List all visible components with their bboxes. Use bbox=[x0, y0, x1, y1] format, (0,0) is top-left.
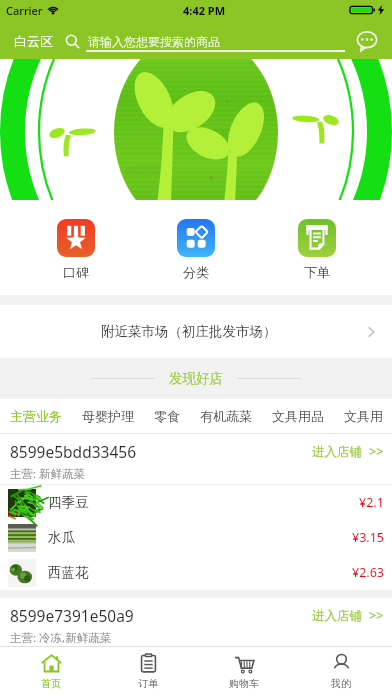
staticText: 白云区 bbox=[14, 33, 53, 49]
staticText: 首页 bbox=[41, 677, 61, 690]
staticText: 附近菜市场（初庄批发市场） bbox=[101, 323, 277, 340]
button[interactable]: 西蓝花 bbox=[0, 555, 392, 590]
staticText: 有机蔬菜 bbox=[200, 408, 252, 424]
button[interactable]: 附近菜市场（初庄批发市场） bbox=[0, 305, 392, 358]
button[interactable]: 母婴护理 bbox=[72, 403, 144, 429]
staticText: 四季豆 bbox=[48, 494, 89, 511]
staticText: 分类 bbox=[183, 264, 209, 280]
button[interactable]: 订单 bbox=[103, 647, 193, 696]
staticText: 4:42 PM bbox=[183, 3, 226, 18]
button[interactable]: 购物车 bbox=[199, 647, 289, 696]
staticText: 水瓜 bbox=[48, 529, 75, 546]
staticText: 文具用品 bbox=[344, 408, 382, 424]
button[interactable]: Messages bbox=[352, 26, 382, 56]
staticText: 主营: 冷冻,新鲜蔬菜 bbox=[10, 630, 112, 646]
staticText: 进入店铺 bbox=[312, 444, 362, 460]
staticText: 购物车 bbox=[229, 677, 259, 690]
button[interactable]: 分类 bbox=[151, 219, 241, 280]
staticText: 文具用品 bbox=[272, 408, 324, 424]
staticText: 8599e7391e50a9 bbox=[10, 605, 134, 626]
button[interactable]: 文具用品 bbox=[262, 403, 334, 429]
staticText: 母婴护理 bbox=[82, 408, 134, 424]
button[interactable]: 主营业务 bbox=[0, 403, 72, 429]
button[interactable]: 水瓜 bbox=[0, 520, 392, 555]
staticText: 8599e5bdd33456 bbox=[10, 441, 137, 462]
staticText: 我的 bbox=[331, 677, 351, 690]
staticText: 订单 bbox=[138, 677, 158, 690]
staticText: 下单 bbox=[304, 264, 330, 280]
button[interactable]: 零食 bbox=[144, 403, 190, 429]
staticText: 零食 bbox=[154, 408, 180, 424]
button[interactable]: 首页 bbox=[6, 647, 96, 696]
button[interactable]: 白云区 bbox=[12, 29, 55, 53]
staticText: 请输入您想要搜索的商品 bbox=[88, 34, 220, 49]
staticText: 口碑 bbox=[63, 264, 89, 280]
button[interactable]: 有机蔬菜 bbox=[190, 403, 262, 429]
button[interactable]: 8599e7391e50a9 bbox=[0, 598, 392, 646]
staticText: ¥2.63 bbox=[352, 564, 384, 581]
staticText: >> bbox=[369, 443, 384, 460]
staticText: 进入店铺 bbox=[312, 608, 362, 624]
staticText: 主营业务 bbox=[10, 408, 62, 424]
button[interactable]: 口碑 bbox=[31, 219, 121, 280]
staticText: 西蓝花 bbox=[48, 564, 89, 581]
staticText: ¥3.15 bbox=[352, 529, 384, 546]
button[interactable]: 文具用品 bbox=[334, 403, 392, 429]
button[interactable]: 请输入您想要搜索的商品 bbox=[65, 27, 344, 55]
button[interactable]: 我的 bbox=[296, 647, 386, 696]
staticText: >> bbox=[369, 607, 384, 624]
staticText: 主营: 新鲜蔬菜 bbox=[10, 466, 86, 482]
staticText: ¥2.1 bbox=[359, 494, 384, 511]
staticText: Carrier bbox=[6, 3, 43, 18]
button[interactable]: 四季豆 bbox=[0, 485, 392, 520]
button[interactable]: 8599e5bdd33456 bbox=[0, 434, 392, 484]
staticText: 发现好店 bbox=[169, 370, 223, 387]
button[interactable]: 下单 bbox=[272, 219, 362, 280]
